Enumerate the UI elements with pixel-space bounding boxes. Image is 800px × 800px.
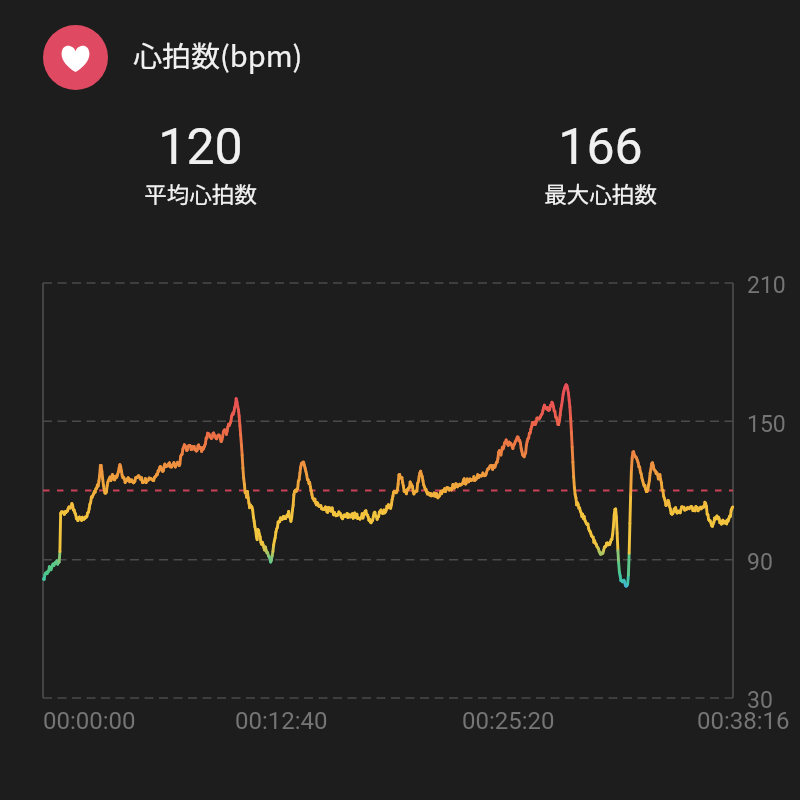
staticText: 90 <box>747 549 773 576</box>
other: Heart rate <box>43 25 108 90</box>
button[interactable]: 166 <box>400 118 800 210</box>
staticText: 210 <box>747 272 786 299</box>
staticText: 120 <box>158 118 243 177</box>
staticText: 166 <box>558 118 643 177</box>
button[interactable]: Heart rate <box>43 21 800 86</box>
staticText: 00:00:00 <box>43 707 136 735</box>
staticText: 最大心拍数 <box>544 177 657 210</box>
staticText: 平均心拍数 <box>144 177 257 210</box>
staticText: 00:38:16 <box>697 707 790 735</box>
staticText: 30 <box>747 687 773 714</box>
button[interactable]: 120 <box>0 118 400 210</box>
staticText: 150 <box>747 411 786 438</box>
staticText: 00:12:40 <box>235 707 328 735</box>
staticText: 心拍数(bpm) <box>133 33 303 75</box>
staticText: 00:25:20 <box>462 707 555 735</box>
